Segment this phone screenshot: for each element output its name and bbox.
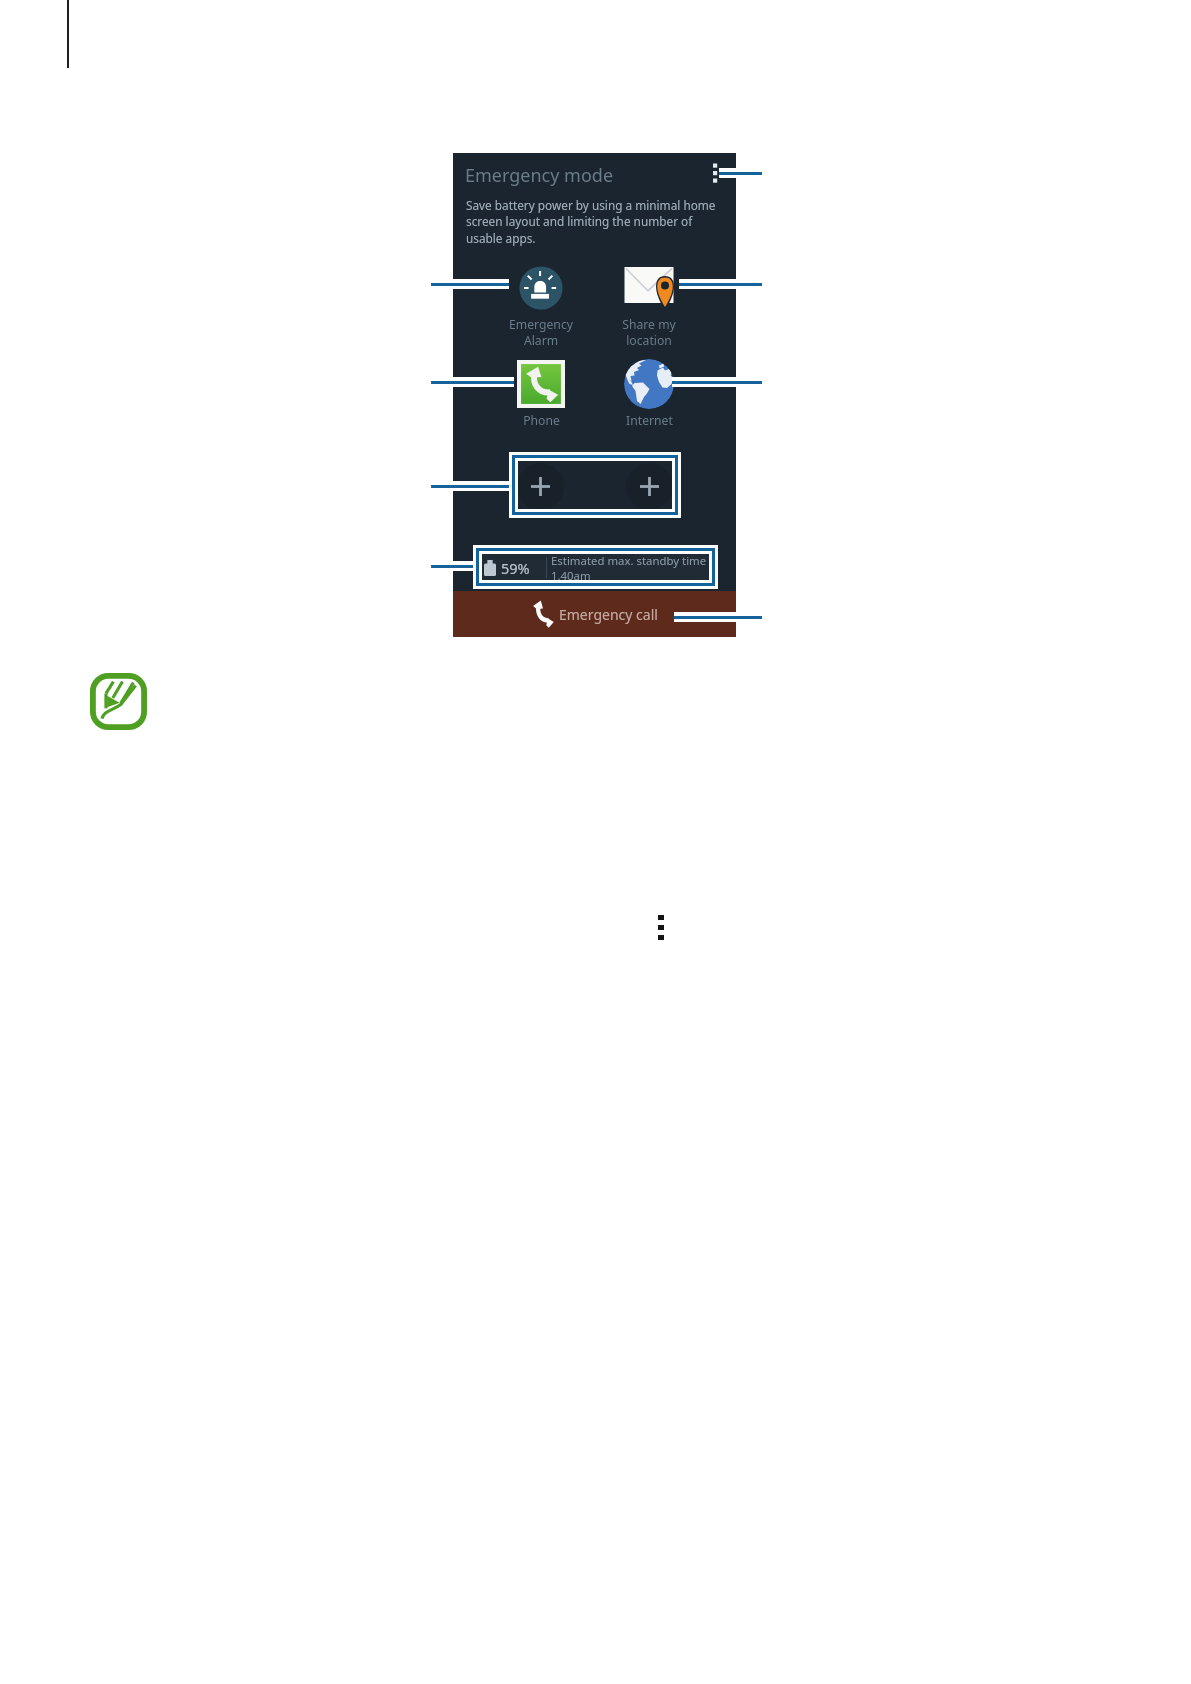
button[interactable]: Share my location [585, 263, 713, 348]
staticText: Emergency Alarm [509, 316, 573, 348]
staticText: Estimated max. standby time 1.40am [551, 553, 707, 582]
staticText: Internet [626, 412, 673, 429]
staticText: Phone [523, 412, 560, 429]
staticText: Emergency call [559, 605, 658, 624]
staticText: Emergency mode [465, 163, 614, 188]
staticText: 59% [501, 558, 530, 578]
button[interactable]: Add shortcut [517, 463, 564, 510]
button[interactable]: Emergency Alarm [477, 263, 605, 348]
button[interactable]: Add shortcut [626, 463, 673, 510]
button[interactable]: Internet [585, 359, 713, 429]
button[interactable]: Phone [477, 359, 605, 429]
button[interactable]: Emergency call [453, 591, 736, 637]
button[interactable]: More options [705, 157, 723, 187]
staticText: Save battery power by using a minimal ho… [466, 197, 716, 247]
staticText: Share my location [622, 316, 676, 348]
